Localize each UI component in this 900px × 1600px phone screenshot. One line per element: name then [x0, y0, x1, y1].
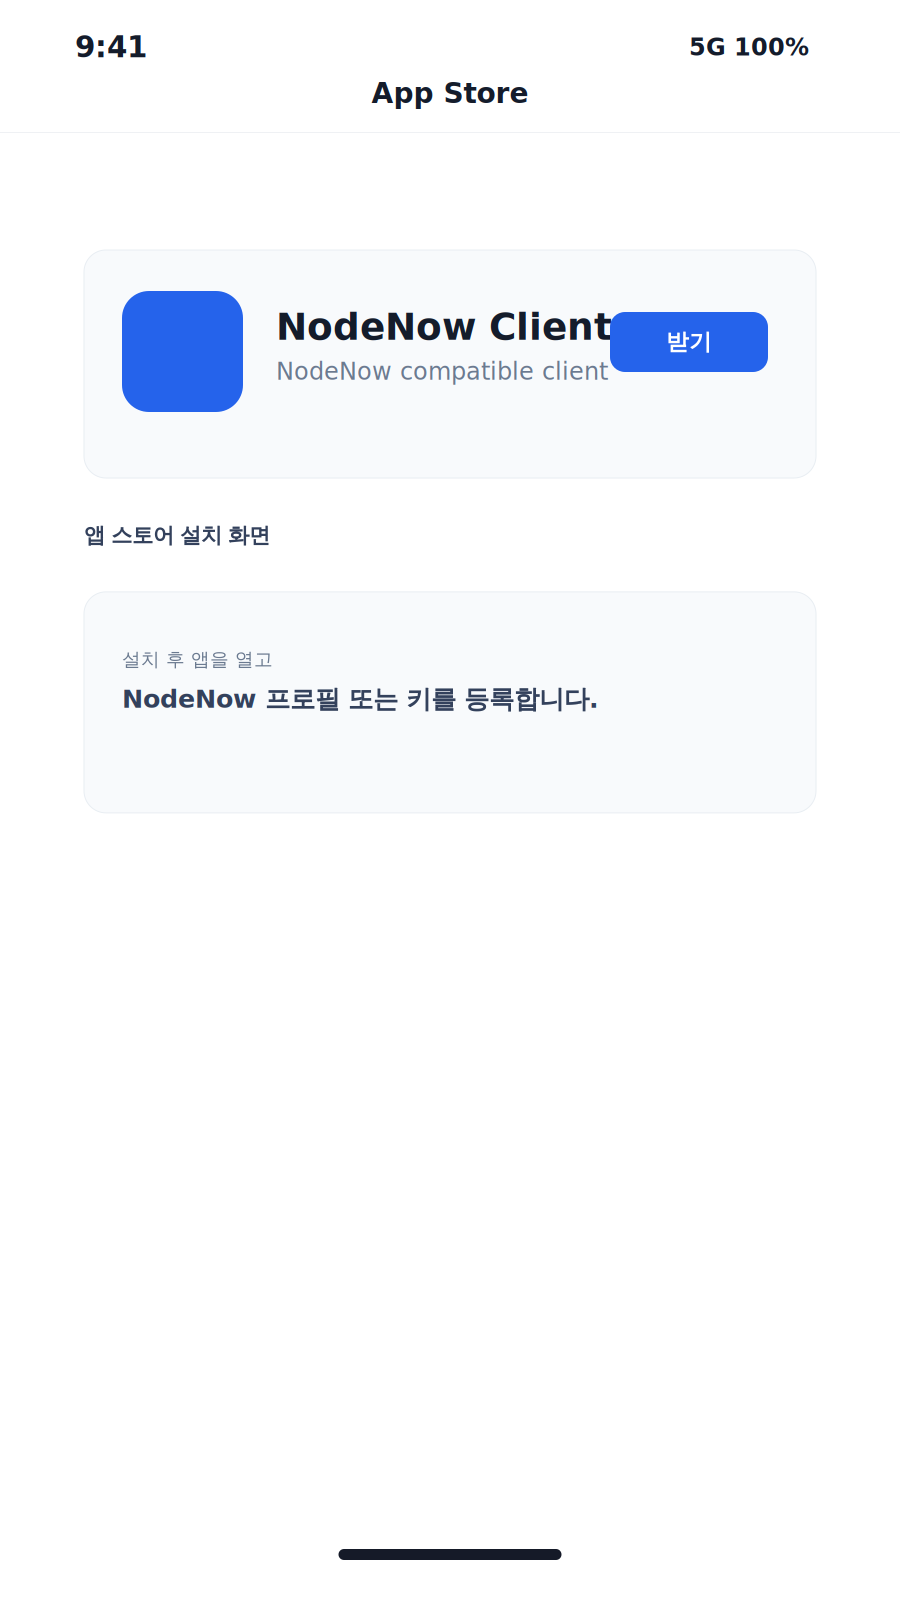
staticText: 5G 100%: [689, 33, 809, 61]
button[interactable]: 받기: [610, 312, 768, 372]
staticText: NodeNow compatible client: [276, 357, 608, 385]
staticText: 설치 후 앱을 열고: [122, 648, 273, 671]
staticText: App Store: [371, 77, 528, 110]
staticText: 앱 스토어 설치 화면: [84, 522, 270, 549]
staticText: NodeNow Client: [276, 305, 612, 348]
staticText: NodeNow 프로필 또는 키를 등록합니다.: [122, 683, 599, 715]
staticText: 9:41: [75, 30, 147, 64]
button[interactable]: NodeNow Client: [84, 250, 816, 478]
staticText: 받기: [666, 328, 712, 356]
